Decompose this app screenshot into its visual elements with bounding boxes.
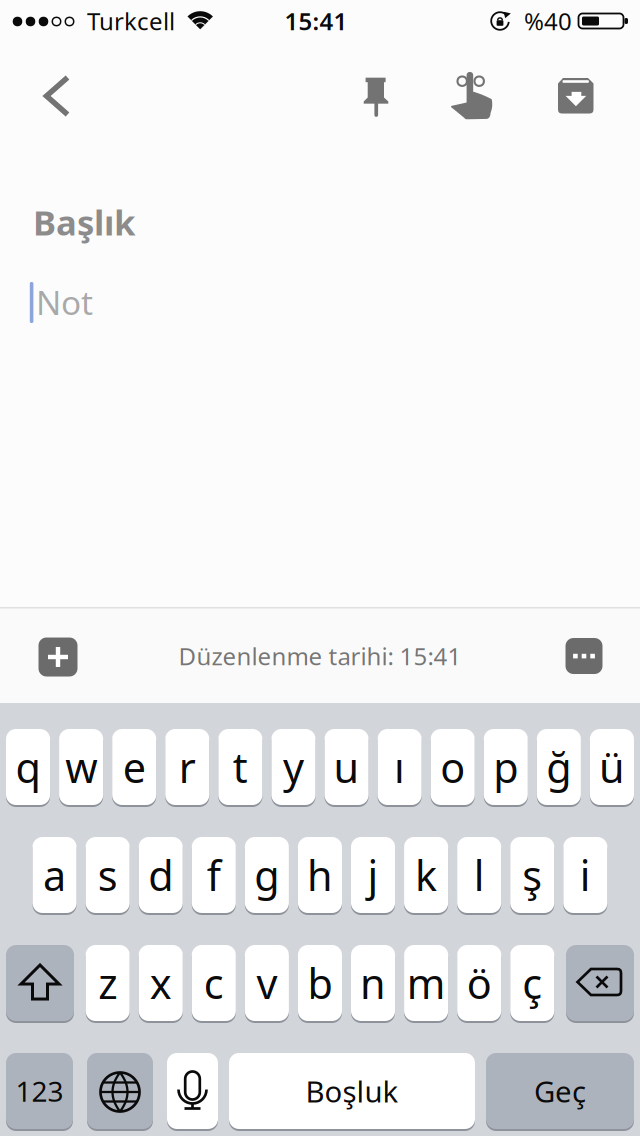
button[interactable]: o: [431, 728, 475, 806]
staticText: t: [233, 740, 248, 794]
staticText: 123: [15, 1072, 63, 1110]
staticText: x: [150, 956, 172, 1010]
button[interactable]: Boşluk: [229, 1052, 475, 1130]
staticText: v: [256, 956, 277, 1010]
staticText: q: [16, 740, 41, 794]
button[interactable]: w: [59, 728, 103, 806]
staticText: Not: [36, 280, 93, 324]
button[interactable]: m: [404, 944, 448, 1022]
staticText: ç: [522, 956, 542, 1010]
staticText: Başlık: [33, 199, 135, 245]
staticText: j: [367, 848, 378, 902]
button[interactable]: n: [351, 944, 395, 1022]
staticText: p: [493, 740, 518, 794]
staticText: Boşluk: [305, 1071, 398, 1110]
button[interactable]: Next keyboard: [87, 1052, 153, 1130]
button[interactable]: r: [165, 728, 209, 806]
staticText: y: [283, 740, 304, 794]
staticText: o: [440, 740, 465, 794]
staticText: a: [43, 848, 66, 902]
button[interactable]: Archive: [543, 63, 607, 127]
button[interactable]: Shift: [6, 944, 74, 1022]
button[interactable]: Back: [26, 66, 86, 126]
staticText: ü: [599, 740, 625, 794]
staticText: m: [407, 956, 446, 1010]
button[interactable]: h: [298, 836, 342, 914]
button[interactable]: q: [6, 728, 50, 806]
staticText: ö: [467, 956, 492, 1010]
button[interactable]: Reminder: [437, 56, 507, 136]
button[interactable]: ö: [457, 944, 501, 1022]
button[interactable]: Pin: [344, 59, 408, 135]
button[interactable]: s: [86, 836, 130, 914]
button[interactable]: t: [218, 728, 262, 806]
staticText: ş: [522, 848, 542, 902]
button[interactable]: ş: [510, 836, 554, 914]
button[interactable]: e: [112, 728, 156, 806]
staticText: %40: [524, 5, 572, 37]
button[interactable]: d: [139, 836, 183, 914]
staticText: ğ: [546, 740, 571, 794]
button[interactable]: x: [139, 944, 183, 1022]
button[interactable]: z: [86, 944, 130, 1022]
button[interactable]: ç: [510, 944, 554, 1022]
staticText: u: [333, 740, 359, 794]
button[interactable]: Add: [38, 637, 77, 676]
staticText: i: [580, 848, 591, 902]
staticText: Düzenlenme tarihi: 15:41: [178, 640, 461, 672]
staticText: l: [474, 848, 485, 902]
staticText: 15:41: [284, 5, 347, 37]
button[interactable]: More: [565, 638, 602, 674]
button[interactable]: g: [245, 836, 289, 914]
staticText: Turkcell: [87, 5, 175, 37]
button[interactable]: Delete: [566, 944, 634, 1022]
staticText: g: [254, 848, 279, 902]
button[interactable]: ı: [378, 728, 422, 806]
staticText: n: [360, 956, 386, 1010]
staticText: e: [123, 740, 146, 794]
button[interactable]: l: [457, 836, 501, 914]
button[interactable]: j: [351, 836, 395, 914]
button[interactable]: Dictate: [167, 1052, 218, 1130]
button[interactable]: ü: [590, 728, 634, 806]
staticText: ı: [394, 740, 405, 794]
staticText: w: [65, 740, 97, 794]
button[interactable]: 123: [6, 1052, 73, 1130]
button[interactable]: c: [192, 944, 236, 1022]
button[interactable]: a: [32, 836, 77, 914]
button[interactable]: i: [563, 836, 607, 914]
button[interactable]: ğ: [537, 728, 581, 806]
button[interactable]: u: [324, 728, 369, 806]
button[interactable]: Geç: [486, 1052, 634, 1130]
staticText: b: [307, 956, 332, 1010]
staticText: k: [415, 848, 437, 902]
button[interactable]: y: [271, 728, 315, 806]
staticText: c: [204, 956, 224, 1010]
button[interactable]: v: [245, 944, 289, 1022]
button[interactable]: b: [298, 944, 342, 1022]
button[interactable]: f: [192, 836, 236, 914]
staticText: r: [179, 740, 196, 794]
staticText: s: [98, 848, 118, 902]
staticText: h: [307, 848, 333, 902]
button[interactable]: p: [484, 728, 528, 806]
staticText: f: [207, 848, 221, 902]
button[interactable]: k: [404, 836, 448, 914]
staticText: d: [148, 848, 173, 902]
staticText: Geç: [534, 1071, 586, 1110]
staticText: z: [98, 956, 117, 1010]
